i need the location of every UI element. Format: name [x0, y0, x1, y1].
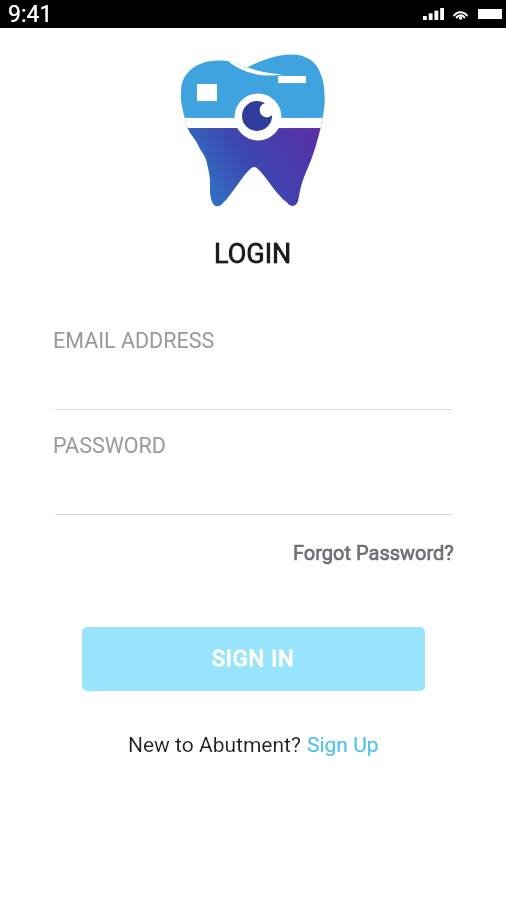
staticText: SIGN IN	[212, 646, 295, 672]
staticText: 9:41	[8, 1, 53, 28]
button[interactable]: Forgot Password?	[293, 541, 454, 564]
staticText: EMAIL ADDRESS	[53, 328, 215, 353]
button[interactable]: Sign Up	[307, 733, 379, 758]
staticText: New to Abutment?	[128, 733, 307, 758]
staticText: PASSWORD	[53, 433, 166, 458]
staticText: LOGIN	[214, 238, 292, 270]
button[interactable]: SIGN IN	[82, 627, 425, 691]
